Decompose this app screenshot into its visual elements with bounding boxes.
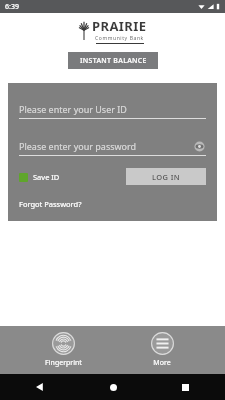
staticText: PRAIRIE (92, 17, 147, 35)
button[interactable]: Fingerprint (28, 332, 98, 368)
staticText: Please enter your User ID (19, 103, 127, 115)
button[interactable]: More (127, 332, 197, 368)
staticText: Fingerprint (45, 358, 82, 368)
staticText: INSTANT BALANCE (80, 56, 147, 66)
button[interactable]: INSTANT BALANCE (68, 52, 158, 69)
button[interactable]: Recent apps (175, 377, 195, 397)
staticText: Save ID (33, 172, 60, 182)
button[interactable]: Please enter your User ID (19, 99, 206, 119)
button[interactable]: Save ID (19, 172, 60, 182)
staticText: Please enter your password (19, 140, 137, 152)
staticText: Forgot Password? (19, 199, 82, 209)
staticText: Community Bank (95, 35, 144, 42)
button[interactable]: Please enter your password (19, 136, 206, 156)
button[interactable]: LOG IN (126, 168, 206, 185)
button[interactable]: Forgot Password? (19, 199, 82, 209)
button[interactable]: Home (103, 377, 123, 397)
button[interactable]: Show password (193, 140, 206, 153)
button[interactable]: Back (30, 377, 50, 397)
staticText: LOG IN (152, 172, 181, 182)
staticText: 6:39 (5, 2, 19, 12)
staticText: More (153, 358, 171, 368)
